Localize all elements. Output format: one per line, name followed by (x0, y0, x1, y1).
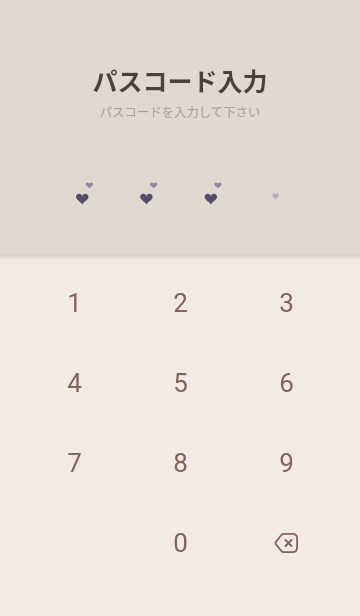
staticText: パスコード入力 (0, 62, 360, 98)
staticText: 0 (173, 528, 188, 558)
button[interactable]: 4 (34, 355, 114, 411)
staticText: 6 (279, 368, 294, 398)
staticText: 3 (279, 288, 294, 318)
staticText: パスコードを入力して下さい (0, 103, 360, 121)
staticText: 7 (67, 448, 82, 478)
button[interactable]: 8 (140, 435, 220, 491)
button[interactable]: 3 (246, 275, 326, 331)
button[interactable]: 5 (140, 355, 220, 411)
button[interactable]: 2 (140, 275, 220, 331)
button[interactable]: 6 (246, 355, 326, 411)
button[interactable]: Delete (246, 515, 326, 571)
button[interactable]: 7 (34, 435, 114, 491)
button[interactable]: 0 (140, 515, 220, 571)
staticText: 9 (279, 448, 294, 478)
staticText: 8 (173, 448, 188, 478)
button[interactable]: 1 (34, 275, 114, 331)
staticText: 4 (67, 368, 82, 398)
button[interactable]: 9 (246, 435, 326, 491)
staticText: 1 (67, 288, 82, 318)
staticText: 2 (173, 288, 188, 318)
staticText: 5 (173, 368, 188, 398)
